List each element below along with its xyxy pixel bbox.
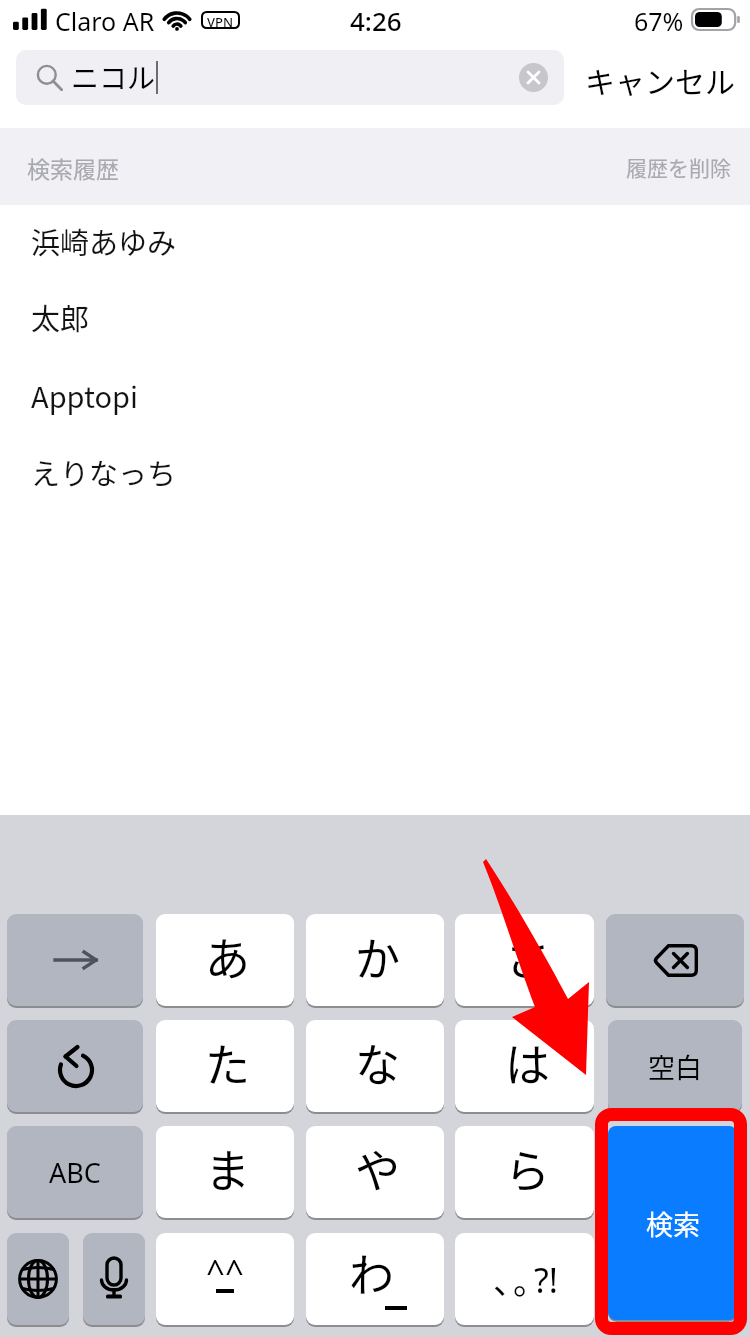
staticText: 。: [513, 1255, 537, 1304]
button[interactable]: ら: [455, 1126, 594, 1218]
button[interactable]: Undo: [7, 1020, 143, 1112]
button[interactable]: か: [306, 914, 444, 1006]
staticText: あ: [205, 924, 251, 989]
staticText: ABC: [49, 1154, 101, 1191]
button[interactable]: えりなっち: [0, 434, 750, 510]
button[interactable]: さ: [455, 914, 594, 1006]
staticText: 空白: [648, 1047, 702, 1086]
staticText: な: [355, 1030, 401, 1095]
button[interactable]: は: [455, 1020, 594, 1112]
button[interactable]: 、: [455, 1233, 594, 1325]
staticText: ま: [205, 1136, 251, 1201]
staticText: 浜崎あゆみ: [31, 220, 177, 262]
button[interactable]: Dictate: [83, 1233, 145, 1325]
staticText: 4:26: [350, 3, 402, 38]
staticText: Claro AR: [55, 4, 155, 38]
staticText: ^^: [206, 1249, 244, 1294]
staticText: か: [355, 924, 401, 989]
button[interactable]: わ: [306, 1233, 444, 1325]
staticText: Apptopi: [31, 374, 139, 416]
button[interactable]: 太郎: [0, 279, 750, 355]
staticText: 太郎: [31, 296, 90, 338]
button[interactable]: 空白: [608, 1020, 742, 1112]
button[interactable]: キャンセル: [572, 48, 738, 106]
button[interactable]: ニコル: [16, 50, 564, 105]
button[interactable]: Switch keyboard: [7, 1233, 69, 1325]
staticText: 、: [493, 1255, 517, 1304]
staticText: えりなっち: [31, 451, 177, 493]
staticText: た: [205, 1030, 251, 1095]
button[interactable]: Emoticon: [156, 1233, 294, 1325]
staticText: や: [355, 1136, 401, 1201]
staticText: さ: [505, 924, 551, 989]
staticText: 67%: [634, 4, 684, 38]
button[interactable]: 履歴を削除: [610, 137, 750, 197]
staticText: キャンセル: [585, 58, 735, 101]
button[interactable]: Clear text: [519, 63, 548, 92]
button[interactable]: 浜崎あゆみ: [0, 203, 750, 279]
button[interactable]: Next: [7, 914, 143, 1006]
button[interactable]: や: [306, 1126, 444, 1218]
button[interactable]: あ: [156, 914, 294, 1006]
button[interactable]: Delete: [606, 914, 744, 1006]
staticText: は: [505, 1030, 551, 1095]
staticText: 検索履歴: [27, 151, 119, 184]
button[interactable]: た: [156, 1020, 294, 1112]
button[interactable]: Apptopi: [0, 355, 750, 434]
button[interactable]: ABC: [7, 1126, 143, 1218]
button[interactable]: ま: [156, 1126, 294, 1218]
staticText: 履歴を削除: [626, 152, 731, 182]
button[interactable]: 検索: [608, 1126, 737, 1320]
staticText: ら: [505, 1136, 551, 1201]
button[interactable]: な: [306, 1020, 444, 1112]
staticText: 検索: [646, 1204, 700, 1243]
staticText: ニコル: [71, 57, 156, 98]
staticText: ?!: [534, 1257, 558, 1303]
staticText: わ: [349, 1240, 395, 1305]
staticText: VPN: [207, 13, 234, 27]
